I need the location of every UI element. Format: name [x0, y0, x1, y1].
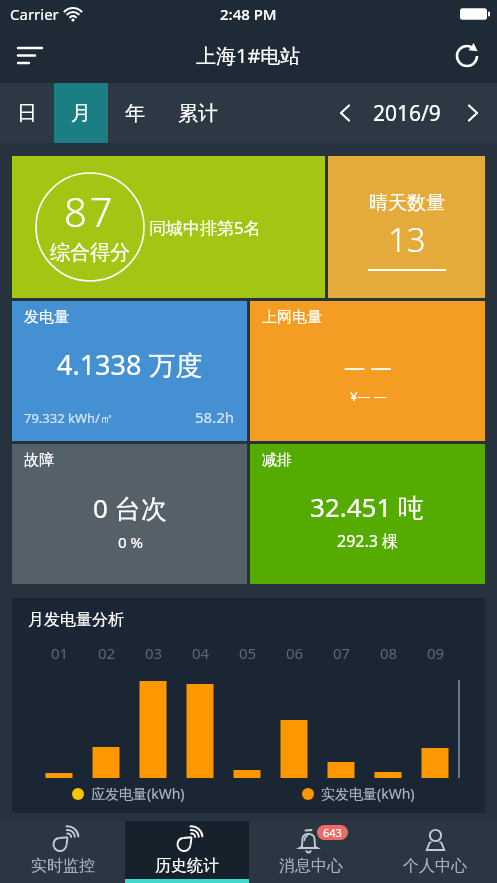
button[interactable]: 个人中心 [373, 821, 497, 883]
staticText: 上海1#电站 [196, 42, 301, 69]
button[interactable]: 日 [0, 83, 54, 143]
button[interactable]: 累计 [162, 83, 234, 143]
staticText: 历史统计 [155, 856, 219, 876]
staticText: 综合得分 [50, 240, 130, 265]
button[interactable]: 历史统计 [125, 821, 249, 883]
staticText: 日 [17, 101, 37, 126]
staticText: 05 [239, 643, 257, 663]
button[interactable]: 发电量 [12, 301, 247, 441]
staticText: 0 % [118, 532, 143, 552]
button[interactable]: 年 [108, 83, 162, 143]
staticText: 年 [125, 101, 145, 126]
staticText: 晴天数量 [369, 191, 445, 215]
button[interactable] [8, 34, 52, 78]
button[interactable] [327, 95, 363, 131]
staticText: Carrier [10, 4, 59, 24]
staticText: 02 [98, 643, 116, 663]
staticText: 09 [427, 643, 445, 663]
staticText: 消息中心 [279, 856, 343, 876]
staticText: 79.332 kWh/㎡ [24, 409, 113, 427]
staticText: 实时监控 [31, 856, 95, 876]
staticText: 实发电量(kWh) [321, 784, 415, 803]
staticText: 4.1338 万度 [57, 346, 203, 383]
staticText: 发电量 [24, 308, 69, 327]
staticText: 月发电量分析 [28, 610, 124, 630]
staticText: 08 [380, 643, 398, 663]
staticText: 58.2h [195, 407, 235, 427]
button[interactable] [455, 95, 491, 131]
staticText: 个人中心 [403, 856, 467, 876]
staticText: 03 [145, 643, 163, 663]
staticText: 累计 [178, 101, 218, 126]
staticText: 87 [64, 184, 116, 238]
staticText: 643 [323, 825, 342, 840]
button[interactable]: 87 [12, 156, 325, 298]
staticText: 32.451 吨 [310, 489, 425, 525]
staticText: 13 [388, 217, 426, 262]
staticText: 292.3 棵 [337, 530, 399, 552]
button[interactable]: 上网电量 [250, 301, 485, 441]
button[interactable]: 月 [54, 83, 108, 143]
button[interactable]: 减排 [250, 444, 485, 584]
staticText: 2:48 PM [220, 4, 277, 24]
staticText: 月 [71, 101, 91, 126]
button[interactable]: 实时监控 [0, 821, 125, 883]
button[interactable]: 故障 [12, 444, 247, 584]
staticText: 04 [192, 643, 210, 663]
staticText: 06 [286, 643, 304, 663]
button[interactable] [445, 34, 489, 78]
staticText: 0 台次 [93, 490, 167, 526]
staticText: 故障 [24, 451, 54, 470]
staticText: 01 [51, 643, 69, 663]
staticText: 07 [333, 643, 351, 663]
staticText: 上网电量 [262, 308, 322, 327]
staticText: 减排 [262, 451, 292, 470]
staticText: — — [344, 353, 392, 382]
staticText: 应发电量(kWh) [91, 784, 185, 803]
staticText: 同城中排第5名 [149, 216, 261, 239]
button[interactable]: 晴天数量 [328, 156, 485, 298]
staticText: ¥— — [350, 387, 387, 405]
staticText: 2016/9 [373, 99, 441, 128]
button[interactable]: 643 [249, 821, 373, 883]
